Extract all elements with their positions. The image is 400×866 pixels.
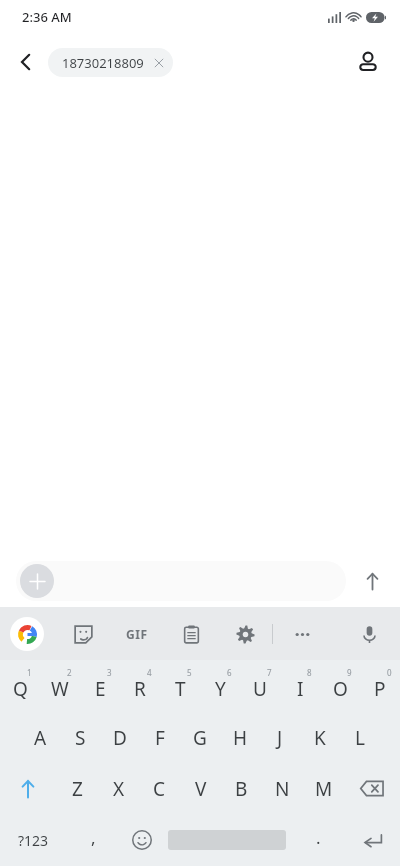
staticText: Y (215, 676, 226, 702)
staticText: F (155, 725, 165, 751)
staticText: W (51, 676, 69, 702)
button[interactable]: . (290, 814, 346, 866)
button[interactable]: J (260, 712, 300, 763)
staticText: Z (72, 776, 83, 802)
staticText: P (374, 676, 386, 702)
button[interactable]: Shift (0, 763, 56, 814)
button[interactable]: Stickers (66, 617, 100, 651)
button[interactable]: E (80, 660, 120, 712)
button[interactable] (164, 814, 290, 866)
button[interactable]: , (66, 814, 120, 866)
staticText: Q (13, 676, 28, 702)
button[interactable]: T (160, 660, 200, 712)
button[interactable]: Enter (346, 814, 400, 866)
staticText: N (275, 776, 290, 802)
staticText: G (193, 725, 207, 751)
staticText: A (34, 725, 47, 751)
button[interactable]: Emoji (120, 814, 164, 866)
staticText: C (153, 776, 166, 802)
staticText: ?123 (18, 831, 49, 850)
staticText: D (113, 725, 127, 751)
button[interactable]: Voice input (352, 617, 386, 651)
staticText: 2:36 AM (22, 8, 72, 26)
button[interactable]: A (20, 712, 60, 763)
button[interactable]: O (320, 660, 360, 712)
button[interactable]: P (360, 660, 400, 712)
button[interactable]: H (220, 712, 260, 763)
staticText: , (91, 826, 96, 849)
button[interactable]: GIF (120, 617, 154, 651)
button[interactable]: F (140, 712, 180, 763)
button[interactable]: K (300, 712, 340, 763)
button[interactable]: 18730218809 (48, 48, 173, 77)
button[interactable]: X (98, 763, 139, 814)
button[interactable]: Send (352, 561, 392, 601)
staticText: M (315, 776, 333, 802)
staticText: K (314, 725, 326, 751)
staticText: 4 (147, 667, 152, 678)
button[interactable]: More options (285, 617, 319, 651)
staticText: . (316, 826, 321, 849)
staticText: E (95, 676, 106, 702)
staticText: 6 (227, 667, 232, 678)
button[interactable]: R (120, 660, 160, 712)
staticText: V (195, 776, 207, 802)
staticText: 1 (27, 667, 32, 678)
button[interactable]: W (40, 660, 80, 712)
staticText: X (113, 776, 125, 802)
staticText: U (253, 676, 267, 702)
button[interactable]: Y (200, 660, 240, 712)
staticText: B (235, 776, 248, 802)
button[interactable]: ?123 (0, 814, 66, 866)
staticText: 0 (387, 667, 392, 678)
staticText: R (134, 676, 146, 702)
button[interactable]: Attach (16, 561, 346, 601)
button[interactable]: I (280, 660, 320, 712)
button[interactable]: L (340, 712, 380, 763)
staticText: L (355, 725, 365, 751)
staticText: 18730218809 (62, 54, 144, 72)
button[interactable]: Attach (20, 564, 54, 598)
button[interactable]: Backspace (344, 763, 400, 814)
staticText: J (277, 725, 283, 751)
staticText: 7 (267, 667, 272, 678)
button[interactable]: G (180, 712, 220, 763)
button[interactable]: Z (56, 763, 98, 814)
staticText: H (233, 725, 248, 751)
staticText: GIF (126, 626, 148, 642)
button[interactable]: Clipboard (174, 617, 208, 651)
button[interactable]: Q (0, 660, 40, 712)
button[interactable]: Back (6, 42, 46, 82)
button[interactable]: M (303, 763, 344, 814)
staticText: S (75, 725, 86, 751)
button[interactable]: D (100, 712, 140, 763)
button[interactable]: Settings (228, 617, 262, 651)
staticText: O (333, 676, 348, 702)
staticText: 2 (67, 667, 72, 678)
button[interactable]: C (139, 763, 180, 814)
staticText: 9 (347, 667, 352, 678)
staticText: 8 (307, 667, 312, 678)
button[interactable]: Contact details (348, 42, 388, 82)
staticText: I (297, 676, 304, 702)
button[interactable]: S (60, 712, 100, 763)
button[interactable]: N (262, 763, 303, 814)
staticText: T (175, 676, 186, 702)
staticText: 3 (107, 667, 112, 678)
button[interactable]: Google (10, 617, 44, 651)
button[interactable]: U (240, 660, 280, 712)
staticText: 5 (187, 667, 192, 678)
button[interactable]: V (180, 763, 221, 814)
button[interactable]: B (221, 763, 262, 814)
